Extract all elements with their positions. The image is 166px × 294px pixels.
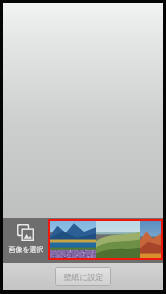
button[interactable]: Select image [3, 218, 48, 263]
button[interactable]: Wallpaper thumbnails [48, 219, 163, 260]
staticText: 壁紙に設定 [63, 272, 104, 282]
other: Select image [17, 224, 34, 241]
button[interactable]: 壁紙に設定 [55, 267, 111, 286]
staticText: 画像を選択 [8, 245, 44, 254]
